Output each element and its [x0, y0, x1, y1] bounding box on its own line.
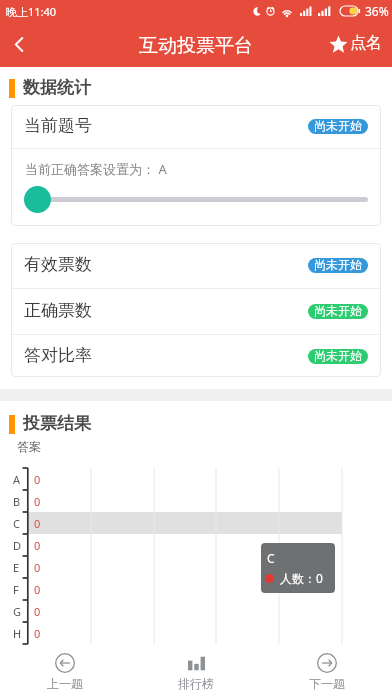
staticText: 当前题号 [24, 115, 92, 136]
staticText: H [13, 626, 22, 641]
staticText: 答案 [17, 439, 41, 454]
staticText: 有效票数 [24, 254, 92, 275]
staticText: E [13, 560, 20, 575]
staticText: 36% [365, 3, 389, 19]
staticText: 0 [34, 472, 41, 487]
staticText: 0 [34, 582, 41, 597]
button[interactable]: Back [2, 23, 36, 65]
staticText: 点名 [350, 33, 382, 53]
staticText: 尚未开始 [314, 304, 362, 318]
staticText: 尚未开始 [314, 349, 362, 363]
staticText: B [13, 494, 21, 509]
staticText: 数据统计 [23, 77, 91, 98]
button[interactable]: 当前题号 [24, 105, 368, 148]
staticText: 0 [34, 604, 41, 619]
button[interactable]: 排行榜 [130, 648, 261, 696]
staticText: 人数：0 [280, 570, 323, 586]
staticText: 互动投票平台 [139, 34, 253, 58]
staticText: 晚上11:40 [6, 4, 57, 19]
staticText: 排行榜 [178, 676, 214, 691]
staticText: 答对比率 [24, 345, 92, 366]
staticText: C [267, 550, 275, 566]
staticText: 下一题 [309, 676, 345, 691]
staticText: 上一题 [47, 676, 83, 691]
button[interactable]: 点名 [329, 23, 382, 65]
staticText: 0 [34, 516, 41, 531]
staticText: 0 [34, 626, 41, 641]
staticText: 正确票数 [24, 300, 92, 321]
button[interactable]: 下一题 [261, 648, 392, 696]
staticText: C [13, 516, 20, 531]
staticText: 当前正确答案设置为： A [25, 160, 167, 178]
staticText: 投票结果 [23, 413, 91, 434]
staticText: G [13, 604, 22, 619]
button[interactable]: 有效票数 [24, 243, 368, 288]
staticText: F [13, 582, 19, 597]
button[interactable]: 答对比率 [24, 335, 368, 377]
staticText: 0 [34, 538, 41, 553]
button[interactable]: 正确票数 [24, 289, 368, 334]
staticText: 尚未开始 [314, 258, 362, 272]
staticText: D [13, 538, 22, 553]
staticText: 0 [34, 560, 41, 575]
staticText: 尚未开始 [314, 119, 362, 133]
staticText: A [13, 472, 21, 487]
staticText: 0 [34, 494, 41, 509]
button[interactable]: 上一题 [0, 648, 130, 696]
